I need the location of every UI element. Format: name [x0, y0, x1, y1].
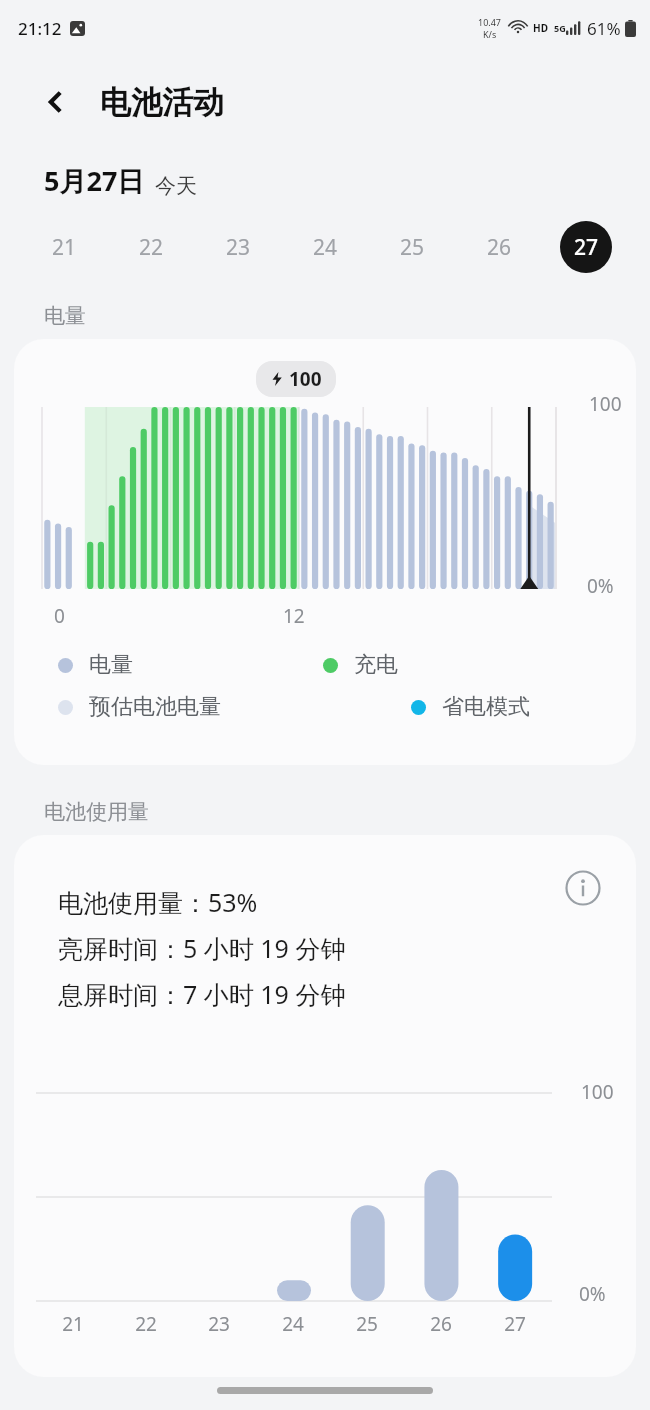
staticText: 电池使用量：53% — [58, 885, 258, 919]
staticText: 26 — [430, 1311, 452, 1337]
staticText: 0% — [587, 573, 614, 599]
staticText: 21 — [62, 1311, 84, 1337]
button[interactable]: 25 — [386, 221, 438, 273]
button[interactable]: Back — [30, 76, 82, 128]
staticText: 21:12 — [18, 17, 62, 40]
staticText: K/s — [483, 28, 497, 40]
staticText: 23 — [208, 1311, 230, 1337]
button[interactable]: 27 — [560, 221, 612, 273]
staticText: 亮屏时间：5 小时 19 分钟 — [58, 931, 346, 965]
button[interactable]: 22 — [125, 221, 177, 273]
staticText: 充电 — [354, 651, 398, 679]
staticText: 25 — [356, 1311, 378, 1337]
staticText: 24 — [313, 233, 338, 262]
staticText: 省电模式 — [442, 693, 530, 721]
staticText: 0% — [579, 1281, 606, 1307]
button[interactable]: 电池使用量：53% — [14, 835, 636, 1377]
button[interactable]: 21 — [38, 221, 90, 273]
staticText: 电池活动 — [100, 83, 224, 122]
button[interactable]: 100 — [14, 339, 636, 765]
staticText: 27 — [504, 1311, 526, 1337]
staticText: 12 — [283, 603, 305, 629]
button[interactable]: 26 — [473, 221, 525, 273]
staticText: 100 — [589, 391, 622, 417]
staticText: 25 — [400, 233, 425, 262]
staticText: 24 — [282, 1311, 304, 1337]
staticText: 22 — [135, 1311, 157, 1337]
staticText: 5月27日 — [44, 162, 145, 199]
staticText: 23 — [226, 233, 251, 262]
staticText: 100 — [289, 366, 322, 392]
staticText: 电池使用量 — [44, 799, 149, 825]
staticText: HD — [533, 21, 548, 35]
staticText: 今天 — [155, 173, 197, 199]
staticText: 0 — [54, 603, 65, 629]
staticText: 电量 — [89, 651, 133, 679]
staticText: 息屏时间：7 小时 19 分钟 — [58, 977, 346, 1011]
button[interactable]: Info — [556, 861, 610, 915]
staticText: 26 — [487, 233, 512, 262]
staticText: 100 — [581, 1079, 614, 1105]
staticText: 61% — [587, 17, 621, 40]
staticText: 5G — [554, 22, 566, 34]
staticText: 21 — [52, 233, 77, 262]
staticText: 10.47 — [478, 16, 502, 28]
button[interactable]: 24 — [299, 221, 351, 273]
staticText: 预估电池电量 — [89, 693, 221, 721]
staticText: 22 — [139, 233, 164, 262]
staticText: 电量 — [44, 303, 86, 329]
button[interactable]: 23 — [212, 221, 264, 273]
staticText: 27 — [574, 233, 599, 262]
